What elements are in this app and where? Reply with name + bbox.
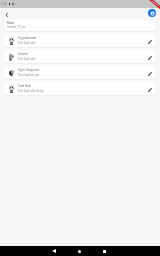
staticText: Rata <box>7 21 14 25</box>
button[interactable]: Edit <box>145 68 154 77</box>
staticText: Gezinti <box>18 52 29 56</box>
button[interactable]: Recents <box>99 246 109 256</box>
staticText: Yeni kayit ekle <box>18 57 36 61</box>
button[interactable]: Uygulamalar <box>4 34 156 47</box>
button[interactable]: Sync <box>148 9 156 17</box>
staticText: Tum kayitlari gor <box>18 73 40 77</box>
staticText: 1:14 <box>1 2 7 6</box>
button[interactable]: Home <box>74 246 84 256</box>
button[interactable]: Rata <box>4 19 156 31</box>
button[interactable]: Gezinti <box>4 50 156 63</box>
staticText: Yeni kayit ekle <box>18 41 36 45</box>
button[interactable]: Edit <box>145 36 154 45</box>
button[interactable]: Ilgini Diagnost <box>4 66 156 79</box>
staticText: Yeni kayit ekle detay <box>18 89 44 93</box>
button[interactable]: Back <box>49 246 59 256</box>
staticText: Uygulamalar <box>18 36 37 40</box>
button[interactable]: Back <box>3 11 10 18</box>
staticText: Female, 17 yrs <box>7 25 26 29</box>
button[interactable]: Ozel Bak <box>4 82 156 95</box>
button[interactable]: Edit <box>145 84 154 93</box>
button[interactable]: Edit <box>145 52 154 61</box>
staticText: Ilgini Diagnost <box>18 68 40 72</box>
staticText: Ozel Bak <box>18 84 31 88</box>
